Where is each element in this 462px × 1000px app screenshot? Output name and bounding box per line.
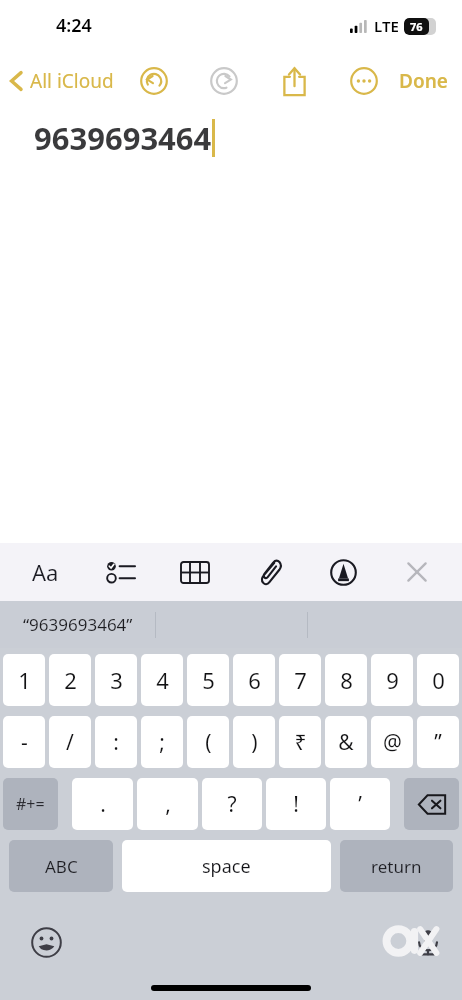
button[interactable]: return — [340, 840, 453, 892]
button[interactable]: ! — [266, 778, 326, 830]
staticText: 2 — [64, 665, 77, 695]
staticText: 6 — [248, 665, 261, 695]
staticText: : — [113, 728, 119, 757]
button[interactable]: 9 — [371, 654, 413, 706]
staticText: ; — [159, 728, 165, 757]
staticText: 76 — [410, 19, 423, 34]
button[interactable]: All iCloud — [0, 62, 122, 100]
staticText: 9 — [386, 665, 399, 695]
staticText: / — [66, 728, 74, 757]
button[interactable]: 3 — [95, 654, 137, 706]
button[interactable]: 0 — [417, 654, 459, 706]
button[interactable]: - — [3, 716, 45, 768]
staticText: 8 — [340, 665, 353, 695]
button[interactable]: ? — [202, 778, 262, 830]
button[interactable]: , — [137, 778, 198, 830]
staticText: ? — [227, 790, 237, 819]
button[interactable]: Emoji keyboard — [24, 920, 68, 964]
button[interactable]: Close keyboard — [380, 543, 454, 601]
staticText: ’ — [358, 790, 362, 819]
button[interactable]: space — [122, 840, 331, 892]
staticText: & — [338, 728, 354, 757]
button[interactable]: ” — [417, 716, 459, 768]
button[interactable]: Done — [385, 62, 462, 100]
button[interactable]: Table — [158, 543, 232, 601]
button[interactable]: ABC — [9, 840, 113, 892]
button[interactable]: More options — [346, 63, 382, 99]
button[interactable]: & — [325, 716, 367, 768]
button[interactable]: Undo — [136, 63, 172, 99]
button[interactable]: 5 — [187, 654, 229, 706]
button[interactable]: / — [49, 716, 91, 768]
button[interactable]: ₹ — [279, 716, 321, 768]
staticText: ABC — [45, 855, 78, 878]
staticText: #+= — [16, 793, 45, 815]
button[interactable]: ; — [141, 716, 183, 768]
button[interactable]: Attach file — [232, 543, 306, 601]
staticText: 5 — [202, 665, 215, 695]
button[interactable]: #+= — [3, 778, 58, 830]
staticText: ) — [251, 728, 258, 757]
staticText: 7 — [294, 665, 307, 695]
button[interactable]: 8 — [325, 654, 367, 706]
staticText: All iCloud — [30, 68, 114, 94]
button[interactable]: 6 — [233, 654, 275, 706]
staticText: 4 — [156, 665, 169, 695]
button[interactable]: : — [95, 716, 137, 768]
staticText: return — [371, 855, 422, 878]
button[interactable]: 1 — [3, 654, 45, 706]
button[interactable]: Checklist — [83, 543, 158, 601]
button[interactable]: Dictation — [406, 920, 450, 964]
staticText: , — [165, 790, 171, 819]
staticText: @ — [383, 728, 402, 757]
button[interactable]: ) — [233, 716, 275, 768]
staticText: Done — [399, 68, 448, 94]
staticText: ! — [293, 790, 299, 819]
staticText: - — [21, 728, 28, 757]
button[interactable]: Share — [276, 63, 312, 99]
staticText: 1 — [18, 665, 31, 695]
button[interactable]: ( — [187, 716, 229, 768]
staticText: 4:24 — [56, 13, 92, 38]
button[interactable]: 7 — [279, 654, 321, 706]
button[interactable]: @ — [371, 716, 413, 768]
staticText: ” — [434, 728, 442, 757]
staticText: “9639693464” — [23, 613, 133, 636]
staticText: ₹ — [294, 728, 307, 757]
staticText: . — [100, 790, 106, 819]
staticText: LTE — [374, 16, 399, 36]
button[interactable]: Backspace — [404, 778, 459, 830]
button[interactable]: “9639693464” — [0, 601, 155, 648]
button[interactable]: . — [72, 778, 133, 830]
staticText: 9639693464 — [34, 117, 212, 159]
staticText: Aa — [32, 557, 59, 587]
button[interactable]: 2 — [49, 654, 91, 706]
button[interactable]: Markup — [306, 543, 380, 601]
staticText: ( — [205, 728, 212, 757]
staticText: space — [202, 854, 251, 879]
staticText: 3 — [110, 665, 123, 695]
staticText: 0 — [432, 665, 445, 695]
button[interactable]: Text format — [8, 543, 83, 601]
button[interactable]: 4 — [141, 654, 183, 706]
button[interactable]: Redo — [206, 63, 242, 99]
button[interactable]: ’ — [330, 778, 390, 830]
